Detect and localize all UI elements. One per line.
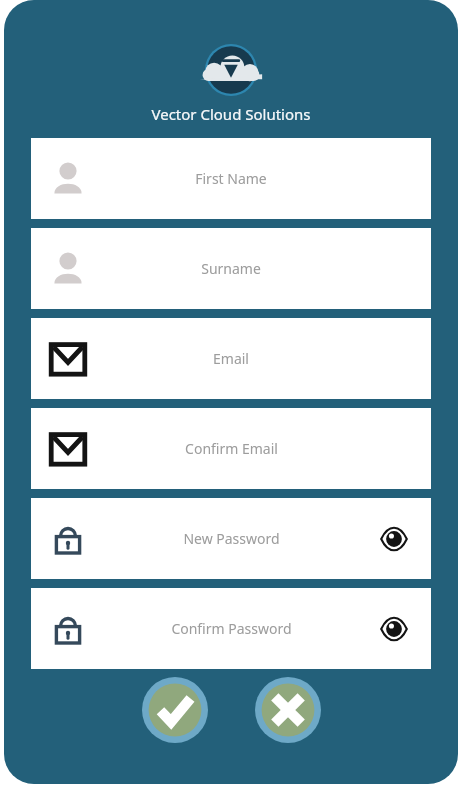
staticText: New Password <box>183 529 280 548</box>
staticText: Email <box>213 349 249 368</box>
button[interactable]: Cancel <box>255 677 321 743</box>
staticText: Vector Cloud Solutions <box>151 104 311 124</box>
button[interactable]: Email <box>31 318 431 399</box>
button[interactable]: Vector Cloud Solutions logo <box>205 44 257 96</box>
staticText: First Name <box>195 169 267 188</box>
button[interactable]: Confirm <box>142 677 208 743</box>
button[interactable]: Confirm Email <box>31 408 431 489</box>
staticText: Confirm Email <box>185 439 278 458</box>
button[interactable]: Surname <box>31 228 431 309</box>
staticText: Confirm Password <box>171 619 292 638</box>
button[interactable]: New Password <box>31 498 431 579</box>
button[interactable]: Show password <box>378 613 410 645</box>
button[interactable]: Show password <box>378 523 410 555</box>
button[interactable]: First Name <box>31 138 431 219</box>
button[interactable]: Confirm Password <box>31 588 431 669</box>
staticText: Surname <box>201 259 261 278</box>
